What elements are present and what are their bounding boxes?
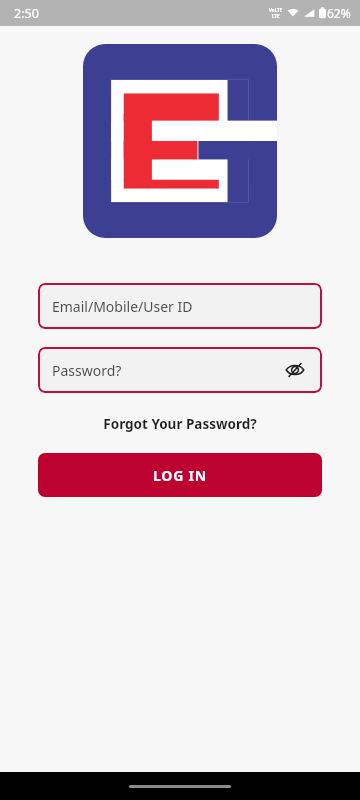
staticText: 62%	[327, 5, 351, 21]
staticText: LOG IN	[153, 466, 208, 485]
staticText: Password?	[52, 361, 282, 380]
staticText: 2:50	[14, 5, 39, 22]
button[interactable]: Password?	[38, 347, 322, 393]
staticText: Email/Mobile/User ID	[52, 297, 193, 316]
staticText: VoLTE	[269, 7, 283, 13]
button[interactable]: Email/Mobile/User ID	[38, 283, 322, 329]
button[interactable]: Show password	[282, 357, 308, 383]
staticText: LTE	[272, 13, 280, 19]
staticText: Forgot Your Password?	[103, 415, 257, 433]
button[interactable]: LOG IN	[38, 453, 322, 497]
button[interactable]: Forgot Your Password?	[95, 413, 265, 435]
